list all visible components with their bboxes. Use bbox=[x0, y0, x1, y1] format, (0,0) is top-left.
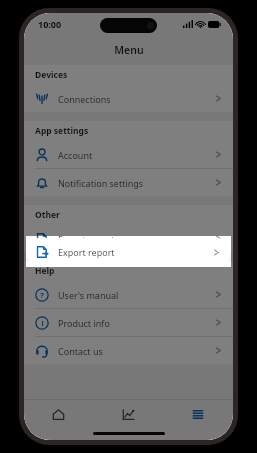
staticText: App settings bbox=[35, 125, 89, 137]
staticText: Export report bbox=[58, 233, 215, 245]
button[interactable]: Account bbox=[24, 141, 233, 168]
button[interactable]: Contact us bbox=[24, 337, 233, 364]
staticText: Help bbox=[35, 265, 55, 277]
button[interactable]: i bbox=[24, 309, 233, 336]
staticText: Devices bbox=[35, 69, 68, 81]
staticText: ? bbox=[40, 290, 44, 300]
button[interactable]: Statistics bbox=[93, 400, 163, 428]
staticText: Menu bbox=[114, 43, 144, 57]
button[interactable]: Export report bbox=[26, 238, 231, 266]
button[interactable]: Menu bbox=[163, 400, 233, 428]
staticText: Account bbox=[58, 149, 215, 161]
button[interactable]: Notification settings bbox=[24, 169, 233, 196]
button[interactable]: ? bbox=[24, 281, 233, 308]
staticText: Connections bbox=[58, 93, 215, 105]
button[interactable]: Home bbox=[24, 400, 93, 428]
button[interactable]: Export report bbox=[24, 225, 233, 252]
button[interactable]: Connections bbox=[24, 85, 233, 112]
staticText: User's manual bbox=[58, 289, 215, 301]
staticText: Other bbox=[35, 209, 60, 221]
staticText: 10:00 bbox=[38, 18, 62, 30]
staticText: Product info bbox=[58, 317, 215, 329]
staticText: Notification settings bbox=[58, 177, 215, 189]
staticText: Contact us bbox=[58, 345, 215, 357]
staticText: Export report bbox=[58, 246, 213, 258]
staticText: i bbox=[41, 318, 44, 328]
